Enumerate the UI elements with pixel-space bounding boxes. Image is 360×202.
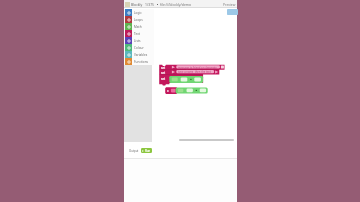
button[interactable]: Text	[124, 30, 154, 37]
staticText: Colour	[134, 46, 144, 50]
button[interactable]: Functions	[124, 58, 154, 65]
staticText: Text	[134, 32, 140, 36]
staticText: message to friend or classmate	[178, 66, 217, 70]
staticText: Output	[129, 149, 139, 153]
staticText: set	[161, 66, 166, 70]
staticText: Functions	[134, 60, 149, 64]
button[interactable]: Colour	[124, 44, 154, 51]
staticText: 1/375	[145, 2, 155, 7]
staticText: Math	[134, 25, 142, 29]
staticText: Lists	[134, 39, 141, 43]
staticText: Blockly	[131, 2, 143, 7]
staticText: Logic	[134, 11, 142, 15]
button[interactable]: Loops	[124, 16, 154, 23]
staticText: Preview	[223, 2, 236, 7]
staticText: Run	[145, 149, 151, 153]
staticText: Loops	[134, 18, 143, 22]
staticText: set	[161, 77, 166, 81]
button[interactable]: Math	[124, 23, 154, 30]
staticText: x	[167, 89, 169, 93]
staticText: type a name, then the text	[178, 70, 211, 74]
button[interactable]: Logic	[124, 9, 154, 16]
button[interactable]: Lists	[124, 37, 154, 44]
button[interactable]: Variables	[124, 51, 154, 58]
button[interactable]: Run	[141, 148, 152, 153]
staticText: Variables	[134, 53, 148, 57]
button[interactable]: Open menu	[227, 9, 238, 15]
staticText: file:///blockly/demo	[160, 2, 192, 7]
staticText: set	[161, 71, 166, 75]
